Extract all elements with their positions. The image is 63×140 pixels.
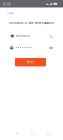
button[interactable]: Show password [48, 46, 54, 50]
staticText: Next [27, 60, 34, 64]
button[interactable]: Back [14, 130, 20, 137]
button[interactable]: Next [15, 58, 46, 66]
button[interactable]: Recents [46, 130, 53, 137]
staticText: MYHOME-4G [16, 35, 30, 38]
button[interactable]: MYHOME-4G [10, 33, 55, 41]
staticText: Cancel [7, 12, 14, 15]
button[interactable]: Cancel [6, 11, 15, 16]
button[interactable]: Home [30, 130, 37, 137]
staticText: Choose Wi-Fi and enter password [9, 22, 54, 25]
staticText: 12:30 [2, 2, 10, 6]
